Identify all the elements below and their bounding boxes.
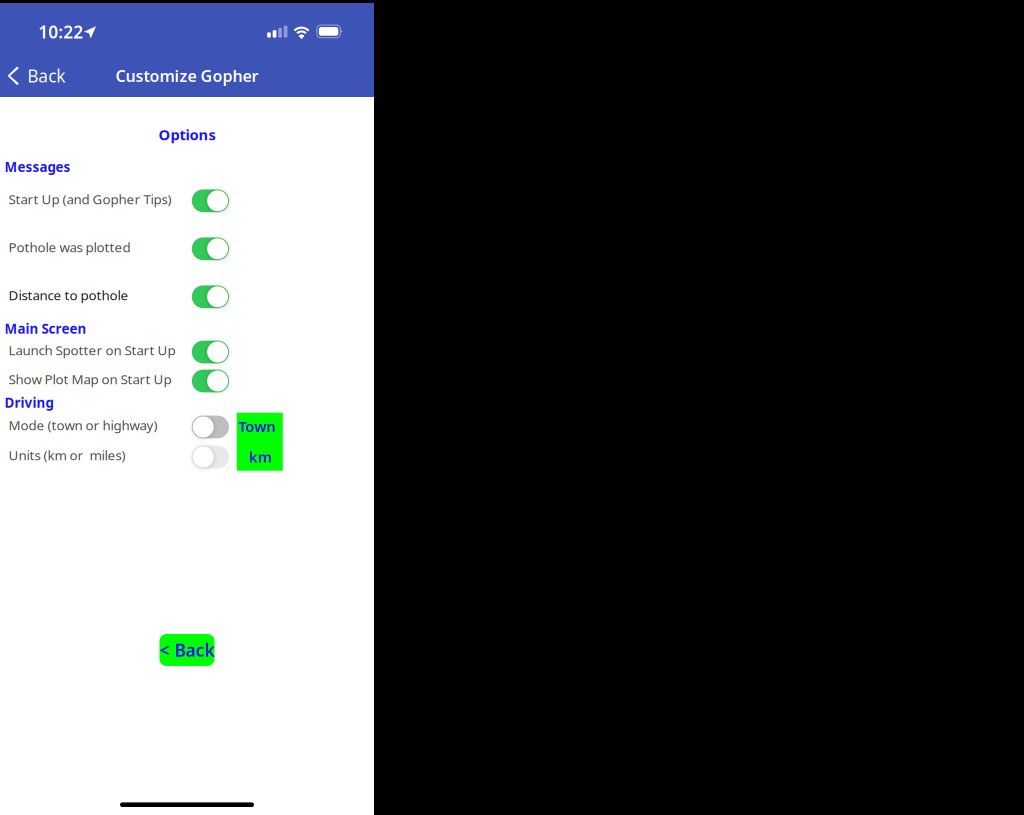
button[interactable]: Back: [0, 56, 77, 96]
button[interactable]: Mode (town or highway): [0, 414, 229, 440]
button[interactable]: Start Up (and Gopher Tips): [0, 188, 229, 214]
staticText: Options: [158, 125, 215, 144]
staticText: Pothole was plotted: [8, 238, 130, 256]
staticText: km: [249, 447, 272, 466]
staticText: Show Plot Map on Start Up: [8, 370, 171, 388]
staticText: Back: [27, 64, 65, 87]
staticText: Main Screen: [4, 320, 86, 337]
button[interactable]: Pothole was plotted: [0, 236, 229, 262]
button[interactable]: Launch Spotter on Start Up: [0, 339, 229, 365]
staticText: Launch Spotter on Start Up: [8, 341, 175, 359]
button[interactable]: Units (km or miles): [0, 444, 229, 470]
staticText: Customize Gopher: [115, 65, 258, 86]
staticText: Distance to pothole: [8, 286, 128, 304]
staticText: Start Up (and Gopher Tips): [8, 190, 171, 208]
staticText: < Back: [159, 638, 214, 661]
staticText: Driving: [4, 394, 53, 411]
button[interactable]: Show Plot Map on Start Up: [0, 368, 229, 394]
staticText: Town: [238, 416, 275, 436]
button[interactable]: < Back: [159, 634, 214, 666]
staticText: Units (km or miles): [8, 446, 125, 464]
staticText: 10:22: [38, 20, 83, 43]
button[interactable]: Distance to pothole: [0, 284, 229, 310]
staticText: Messages: [4, 158, 70, 176]
staticText: Mode (town or highway): [8, 416, 157, 434]
